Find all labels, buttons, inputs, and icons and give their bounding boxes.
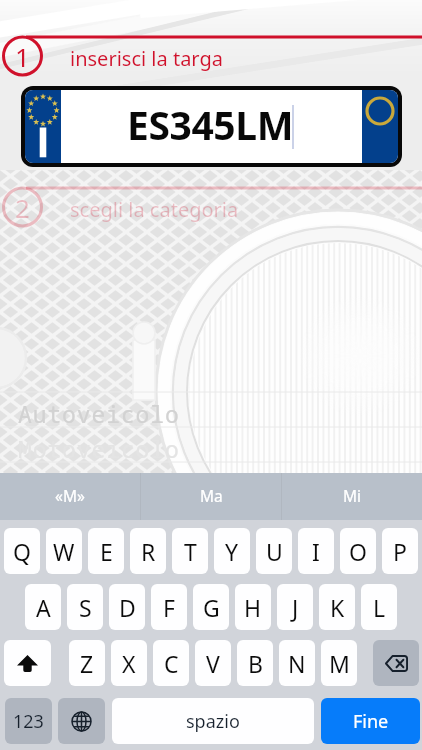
staticText: 1: [15, 39, 30, 74]
button[interactable]: Mi: [282, 473, 422, 520]
staticText: J: [292, 592, 299, 623]
button[interactable]: scegli la categoria: [70, 196, 239, 223]
button[interactable]: J: [277, 584, 313, 630]
staticText: Ma: [200, 485, 223, 506]
button[interactable]: G: [193, 584, 229, 630]
staticText: 2: [15, 190, 30, 225]
staticText: K: [330, 592, 345, 623]
staticText: F: [163, 592, 175, 623]
staticText: N: [288, 648, 306, 679]
button[interactable]: P: [382, 528, 418, 574]
button[interactable]: X: [111, 640, 147, 686]
staticText: X: [122, 648, 136, 679]
staticText: «M»: [55, 485, 85, 506]
button[interactable]: «M»: [0, 473, 140, 520]
button[interactable]: 123: [5, 698, 52, 744]
staticText: O: [349, 536, 367, 567]
staticText: P: [393, 536, 407, 567]
button[interactable]: T: [172, 528, 208, 574]
button[interactable]: V: [195, 640, 231, 686]
staticText: I: [312, 536, 320, 567]
button[interactable]: Motoveicolo: [18, 433, 180, 464]
button[interactable]: Y: [214, 528, 250, 574]
button[interactable]: O: [340, 528, 376, 574]
button[interactable]: R: [130, 528, 166, 574]
staticText: Y: [225, 536, 239, 567]
button[interactable]: Ma: [141, 473, 281, 520]
staticText: C: [164, 648, 179, 679]
staticText: 123: [13, 709, 44, 734]
button[interactable]: Autoveicolo: [18, 398, 180, 429]
button[interactable]: M: [321, 640, 357, 686]
staticText: M: [329, 648, 350, 679]
button[interactable]: C: [153, 640, 189, 686]
staticText: spazio: [186, 709, 240, 734]
button[interactable]: H: [235, 584, 271, 630]
staticText: T: [184, 536, 197, 567]
button[interactable]: Q: [4, 528, 40, 574]
staticText: L: [373, 592, 386, 623]
button[interactable]: S: [67, 584, 103, 630]
button[interactable]: Change keyboard: [58, 698, 105, 744]
staticText: W: [53, 536, 75, 567]
button[interactable]: I: [298, 528, 334, 574]
button[interactable]: Shift: [4, 640, 51, 686]
button[interactable]: spazio: [112, 698, 314, 744]
button[interactable]: E: [88, 528, 124, 574]
staticText: ES345LM: [127, 98, 294, 151]
button[interactable]: U: [256, 528, 292, 574]
staticText: D: [119, 592, 136, 623]
staticText: Z: [80, 648, 94, 679]
staticText: G: [203, 592, 220, 623]
button[interactable]: Z: [69, 640, 105, 686]
button[interactable]: Delete: [373, 640, 419, 686]
staticText: R: [141, 536, 156, 567]
staticText: E: [100, 536, 113, 567]
button[interactable]: B: [237, 640, 273, 686]
staticText: Mi: [343, 485, 362, 506]
staticText: Q: [13, 536, 31, 567]
staticText: Fine: [353, 709, 389, 734]
button[interactable]: D: [109, 584, 145, 630]
button[interactable]: L: [361, 584, 397, 630]
staticText: H: [244, 592, 262, 623]
staticText: S: [79, 592, 92, 623]
button[interactable]: inserisci la targa: [70, 45, 223, 72]
staticText: V: [206, 648, 220, 679]
staticText: U: [266, 536, 283, 567]
button[interactable]: W: [46, 528, 82, 574]
button[interactable]: N: [279, 640, 315, 686]
staticText: A: [36, 592, 51, 623]
staticText: B: [248, 648, 263, 679]
button[interactable]: A: [25, 584, 61, 630]
button[interactable]: ES345LM: [25, 90, 398, 163]
button[interactable]: K: [319, 584, 355, 630]
button[interactable]: Fine: [321, 698, 420, 744]
button[interactable]: F: [151, 584, 187, 630]
